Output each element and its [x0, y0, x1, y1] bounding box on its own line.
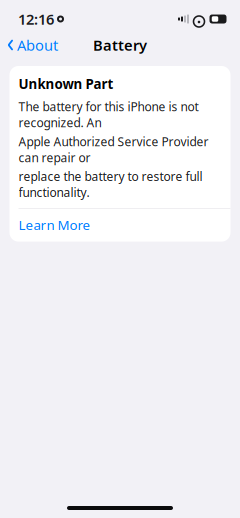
staticText: Apple Authorized Service Provider can re… [18, 134, 208, 165]
staticText: 12:16 [18, 9, 54, 29]
staticText: Battery [93, 35, 147, 55]
staticText: Unknown Part [18, 75, 113, 93]
staticText: About [17, 35, 58, 55]
button[interactable]: Learn More [9, 209, 230, 242]
staticText: Learn More [18, 216, 90, 234]
staticText: The battery for this iPhone is not recog… [18, 99, 198, 131]
button[interactable]: About [0, 31, 58, 59]
staticText: replace the battery to restore full func… [18, 168, 202, 200]
